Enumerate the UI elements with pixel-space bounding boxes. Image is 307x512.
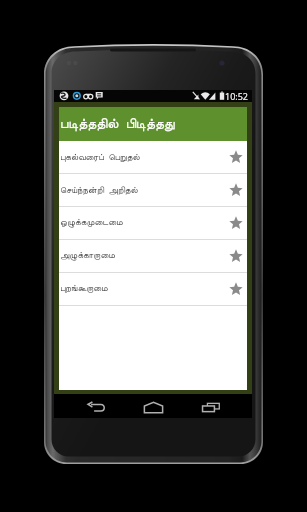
staticText: புகல்வரைப் பெறுதல் bbox=[60, 150, 225, 162]
button[interactable]: Favourite bbox=[225, 207, 247, 239]
staticText: புறங்கூறாமை bbox=[60, 284, 225, 293]
button[interactable]: அழுக்காறாமை bbox=[59, 240, 247, 272]
button[interactable]: Favourite bbox=[225, 273, 247, 305]
button[interactable]: புறங்கூறாமை bbox=[59, 273, 247, 305]
staticText: அழுக்காறாமை bbox=[60, 251, 225, 260]
staticText: படித்ததில் பிடித்தது bbox=[60, 113, 175, 132]
button[interactable]: Recents bbox=[190, 394, 232, 418]
button[interactable]: Favourite bbox=[225, 240, 247, 272]
button[interactable]: Favourite bbox=[225, 141, 247, 173]
button[interactable]: Back bbox=[75, 394, 117, 418]
staticText: ஒழுக்கமுடைமை bbox=[60, 218, 225, 227]
button[interactable]: செய்ந்நன்றி அறிதல் bbox=[59, 174, 247, 206]
button[interactable]: Home bbox=[132, 394, 174, 418]
button[interactable]: Favourite bbox=[225, 174, 247, 206]
button[interactable]: புகல்வரைப் பெறுதல் bbox=[59, 141, 247, 173]
staticText: செய்ந்நன்றி அறிதல் bbox=[60, 183, 225, 195]
button[interactable]: ஒழுக்கமுடைமை bbox=[59, 207, 247, 239]
button[interactable]: படித்ததில் பிடித்தது bbox=[59, 107, 247, 141]
staticText: 10:52 bbox=[225, 90, 249, 102]
